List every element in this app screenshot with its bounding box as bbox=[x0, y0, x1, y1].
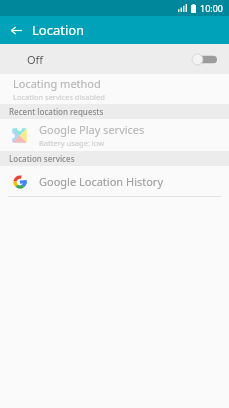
button[interactable]: Google Location History bbox=[0, 166, 229, 196]
button[interactable]: Back bbox=[5, 19, 27, 41]
button[interactable]: Google Play services bbox=[0, 119, 229, 151]
button[interactable]: Locating method bbox=[0, 74, 229, 104]
staticText: Locating method bbox=[13, 76, 101, 91]
staticText: Location bbox=[32, 21, 85, 39]
staticText: Google Location History bbox=[39, 174, 164, 189]
staticText: Recent location requests bbox=[9, 106, 104, 117]
staticText: 10:00 bbox=[200, 2, 224, 14]
staticText: Location services bbox=[9, 153, 75, 164]
button[interactable]: Off bbox=[0, 44, 229, 74]
staticText: Off bbox=[27, 52, 44, 67]
staticText: Location services disabled bbox=[13, 92, 105, 102]
staticText: Google Play services bbox=[39, 122, 145, 137]
staticText: Battery usage: low bbox=[39, 138, 105, 148]
